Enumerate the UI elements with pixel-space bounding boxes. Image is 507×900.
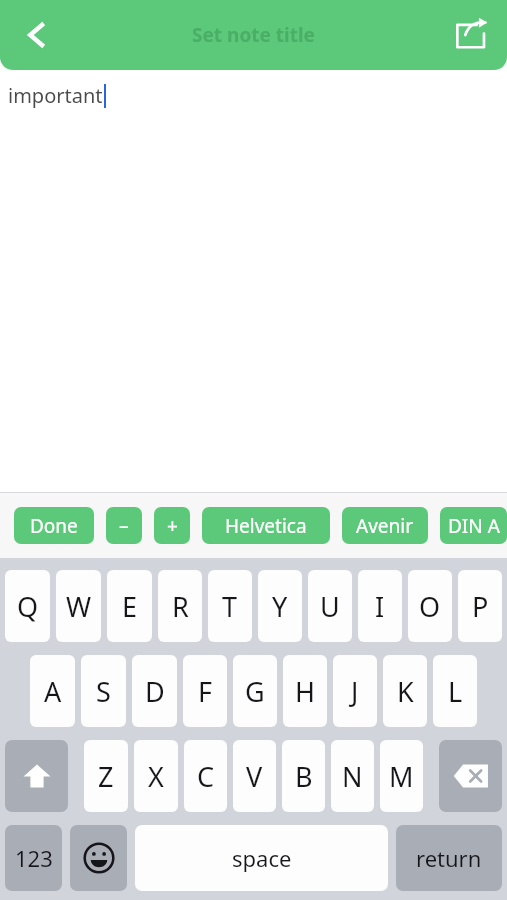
button[interactable]: F [183, 655, 227, 727]
staticText: Done [30, 513, 78, 539]
staticText: D [145, 673, 165, 710]
staticText: Q [17, 588, 39, 625]
staticText: Z [98, 758, 114, 795]
button[interactable]: B [282, 740, 325, 812]
button[interactable]: U [308, 570, 352, 642]
button[interactable]: C [184, 740, 227, 812]
staticText: Set note title [192, 22, 315, 48]
button[interactable]: W [56, 570, 101, 642]
staticText: space [232, 843, 292, 873]
button[interactable]: return [396, 825, 502, 891]
button[interactable]: X [134, 740, 178, 812]
staticText: important [8, 82, 103, 109]
button[interactable]: A [30, 655, 75, 727]
staticText: X [148, 758, 164, 795]
button[interactable]: Done [14, 507, 94, 544]
staticText: A [44, 673, 62, 710]
button[interactable]: P [458, 570, 502, 642]
button[interactable]: L [433, 655, 477, 727]
button[interactable]: G [233, 655, 277, 727]
button[interactable]: Helvetica [202, 507, 330, 544]
staticText: W [66, 588, 92, 625]
staticText: Helvetica [225, 513, 307, 539]
button[interactable]: E [107, 570, 152, 642]
button[interactable]: space [135, 825, 388, 891]
staticText: Y [272, 588, 288, 625]
staticText: S [96, 673, 111, 710]
staticText: – [119, 513, 129, 539]
staticText: N [342, 758, 363, 795]
button[interactable]: M [380, 740, 423, 812]
button[interactable]: Back [10, 7, 66, 63]
button[interactable]: 123 [5, 825, 62, 891]
staticText: C [197, 758, 215, 795]
staticText: L [448, 673, 463, 710]
button[interactable]: Shift [5, 740, 68, 812]
button[interactable]: Avenir [342, 507, 428, 544]
staticText: U [320, 588, 340, 625]
button[interactable]: V [233, 740, 276, 812]
staticText: V [246, 758, 263, 795]
staticText: H [295, 673, 316, 710]
button[interactable]: + [154, 507, 190, 544]
staticText: M [389, 758, 414, 795]
staticText: G [245, 673, 265, 710]
button[interactable]: K [383, 655, 427, 727]
button[interactable]: N [331, 740, 374, 812]
staticText: + [167, 513, 178, 539]
button[interactable]: T [208, 570, 252, 642]
staticText: T [222, 588, 238, 625]
button[interactable]: J [333, 655, 377, 727]
button[interactable]: Q [5, 570, 50, 642]
button[interactable]: Emoji [70, 825, 127, 891]
button[interactable]: DIN A [440, 507, 507, 544]
button[interactable]: H [283, 655, 327, 727]
button[interactable]: – [106, 507, 142, 544]
button[interactable]: Backspace [439, 740, 502, 812]
staticText: K [397, 673, 414, 710]
button[interactable]: I [358, 570, 402, 642]
staticText: J [351, 673, 359, 710]
staticText: 123 [15, 843, 53, 873]
staticText: P [472, 588, 489, 625]
staticText: E [122, 588, 138, 625]
button[interactable]: Z [84, 740, 128, 812]
button[interactable]: R [158, 570, 202, 642]
button[interactable]: Share [443, 7, 499, 63]
staticText: O [419, 588, 441, 625]
button[interactable]: S [81, 655, 126, 727]
button[interactable]: D [132, 655, 177, 727]
button[interactable]: Y [258, 570, 302, 642]
button[interactable]: O [408, 570, 452, 642]
staticText: Avenir [356, 513, 414, 539]
staticText: DIN A [448, 513, 500, 539]
staticText: I [375, 588, 385, 625]
staticText: R [172, 588, 189, 625]
staticText: B [295, 758, 313, 795]
staticText: F [198, 673, 213, 710]
staticText: return [416, 843, 482, 873]
